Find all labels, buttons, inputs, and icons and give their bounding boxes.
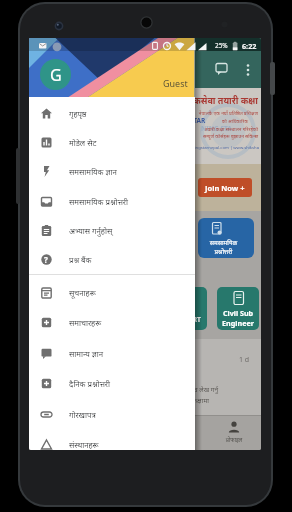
staticText: को आधिकारिक [222,118,248,124]
staticText: संस्थानहरू [69,440,99,450]
staticText: सामान्य ज्ञान [69,349,104,360]
staticText: NING STA [201,124,232,133]
staticText: तयारी कक्षा सञ्चालन गरिरहेको [69,126,258,137]
button[interactable]: गोरखापत्र [29,400,195,429]
staticText: लोकसेवा तयारी कक्षा [69,94,258,114]
staticText: मोडेल सेट [69,138,97,149]
button[interactable]: Civil Sub [217,287,259,330]
button[interactable]: दैनिक प्रश्नोत्तरी [29,369,195,398]
staticText: दैनिक प्रश्नोत्तरी [69,379,111,390]
staticText: प्रश्नोत्तरी [198,247,249,258]
staticText: समसामयिक ज्ञान [69,167,117,178]
staticText: समसामयिक [198,238,249,252]
button[interactable]: समसामयिक ज्ञान [29,157,195,186]
button[interactable]: संस्थानहरू [29,430,195,450]
button[interactable]: समसामयिक [198,218,254,258]
button[interactable]: सामान्य ज्ञान [29,339,195,368]
staticText: सम्पूर्ण कोर्सहरू बुझाउन सकिन्छ [69,133,258,144]
staticText: Civil Sub [217,308,259,324]
staticText: सूचनाहरू [69,288,96,299]
staticText: नेपालकै एक नयाँ प्रतिष्ठित प्रशिक्षण [69,110,258,121]
staticText: प्रोफाइल [215,436,253,448]
button[interactable]: समाचारहरू [29,308,195,337]
button[interactable]: प्रोफाइल [215,416,253,449]
button[interactable]: सूचनाहरू [29,278,195,307]
staticText: गृहपृष्ठ [69,109,87,120]
staticText: ? [44,254,48,265]
staticText: 1 d [239,355,250,365]
staticText: अभ्यास गर्नुहोस् [69,226,113,237]
staticText: गोरखापत्र [69,410,96,421]
staticText: G [50,64,62,86]
staticText: Join Now + [205,183,245,193]
staticText: Engineer [217,318,259,330]
staticText: प्रश्न बैंक [69,255,92,266]
staticText: www.shiningstarnepal.com | www.shiksha [69,145,259,154]
staticText: समसामयिक प्रश्नोत्तरी [69,197,129,208]
staticText: समाचारहरू [69,318,102,329]
button[interactable]: अभ्यास गर्नुहोस् [29,216,195,245]
staticText: 25% [215,41,228,50]
button[interactable]: ERT [149,287,207,330]
button[interactable]: मोडेल सेट [29,128,195,157]
button[interactable]: समसामयिक प्रश्नोत्तरी [29,187,195,216]
staticText: तयारी कक्षामा [109,396,209,410]
staticText: ERT [189,315,201,324]
staticText: 6:22 [242,41,257,51]
button[interactable]: प्रश्न बैंक [29,245,195,274]
staticText: SHINING STAR [159,116,206,125]
staticText: यहाँ सुझाव लेख गर्नु [118,385,218,399]
button[interactable]: Join Now + [198,178,252,197]
button[interactable]: गृहपृष्ठ [29,99,195,128]
staticText: Guest [163,77,188,89]
